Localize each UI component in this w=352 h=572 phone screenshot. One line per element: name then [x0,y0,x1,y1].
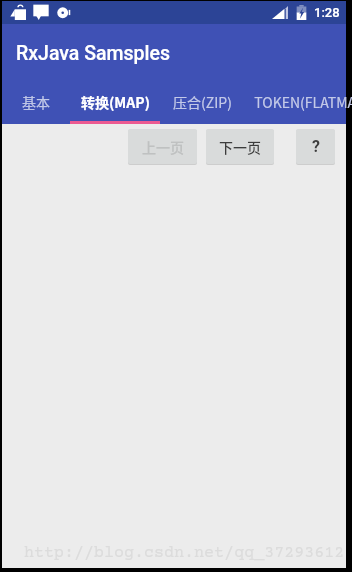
staticText: 基本 [22,92,50,112]
staticText: 转换(MAP) [81,92,150,112]
button[interactable]: TOKEN(FLATMAP) [244,80,352,124]
staticText: RxJava Samsples [16,42,170,65]
staticText: http://blog.csdn.net/qq_37293612 [24,544,345,563]
button[interactable]: 转换(MAP) [70,80,160,124]
staticText: 上一页 [142,137,184,157]
staticText: ? [312,137,320,156]
staticText: 下一页 [219,137,261,157]
button[interactable]: 上一页 [128,129,197,164]
staticText: 压合(ZIP) [173,92,232,112]
button[interactable]: ? [296,129,335,164]
button[interactable]: 压合(ZIP) [160,80,244,124]
button[interactable]: 下一页 [206,129,274,164]
staticText: 1:28 [314,5,340,20]
button[interactable]: 基本 [2,80,70,124]
staticText: TOKEN(FLATMAP) [254,92,352,112]
